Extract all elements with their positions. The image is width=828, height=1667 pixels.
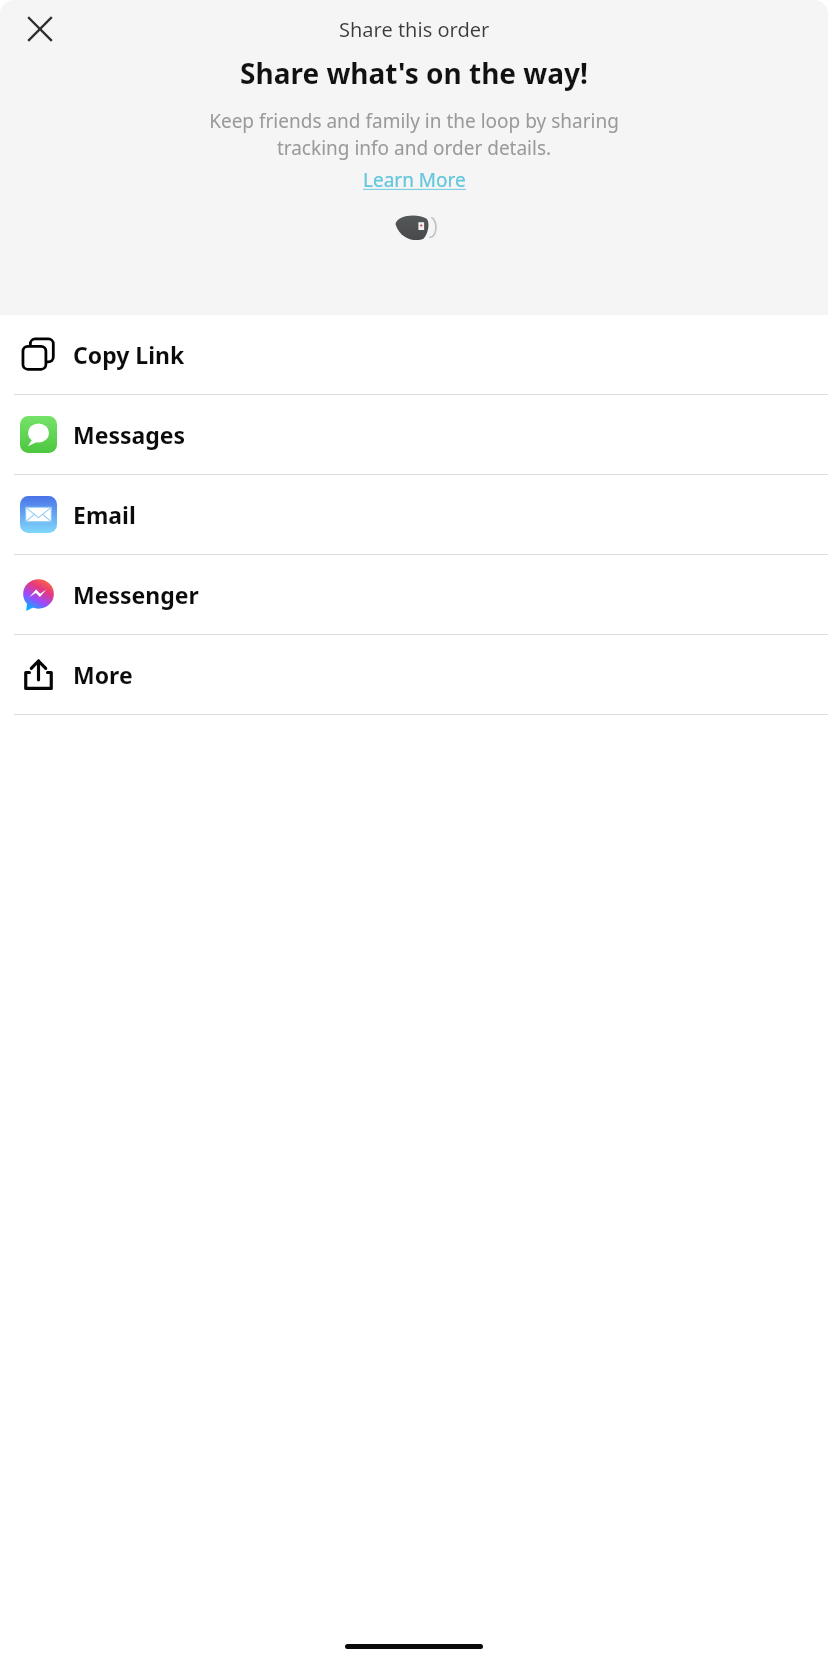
button[interactable]: Messenger — [0, 555, 828, 634]
button[interactable]: Close — [16, 5, 64, 53]
button[interactable]: Learn More — [357, 165, 472, 195]
button[interactable]: More — [0, 635, 828, 714]
staticText: Share this order — [339, 16, 490, 43]
button[interactable]: Messages — [0, 395, 828, 474]
staticText: Share what's on the way! — [240, 54, 588, 92]
staticText: Email — [73, 499, 136, 530]
button[interactable]: Email — [0, 475, 828, 554]
staticText: Messenger — [73, 579, 199, 610]
staticText: Messages — [73, 419, 186, 450]
staticText: More — [73, 659, 133, 690]
button[interactable]: Copy Link — [0, 315, 828, 394]
staticText: Copy Link — [73, 339, 185, 370]
staticText: Keep friends and family in the loop by s… — [209, 108, 619, 161]
staticText: Learn More — [363, 167, 466, 193]
